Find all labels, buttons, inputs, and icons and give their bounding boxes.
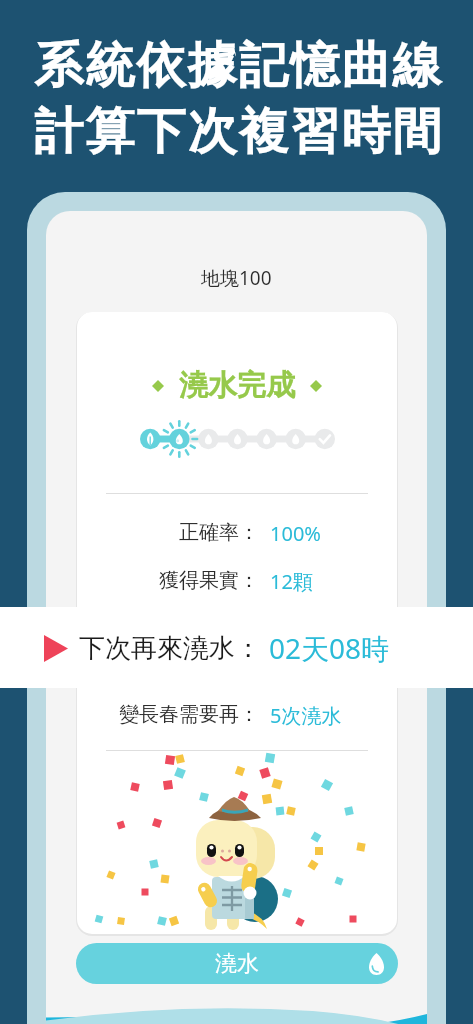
staticText: 澆水完成 xyxy=(179,367,295,404)
staticText: 變長春需要再： xyxy=(119,702,259,727)
staticText: 12顆 xyxy=(270,568,313,595)
staticText: 正確率： xyxy=(179,520,259,545)
staticText: 下次再來澆水： xyxy=(79,632,261,665)
button[interactable]: 地塊100 xyxy=(187,255,286,301)
staticText: 地塊100 xyxy=(201,265,272,291)
staticText: 100% xyxy=(270,520,321,547)
staticText: 獲得果實： xyxy=(159,568,259,593)
button[interactable]: 澆水完成 xyxy=(77,312,397,934)
staticText: 下次再來澆水： xyxy=(119,635,259,660)
button[interactable]: 澆水 xyxy=(76,943,398,984)
staticText: 02天08時 xyxy=(269,629,390,667)
staticText: 澆水 xyxy=(215,950,259,978)
staticText: 02天08時 xyxy=(270,635,356,662)
button[interactable]: 下次再來澆水： xyxy=(0,607,473,688)
staticText: 系統依據記憶曲線 計算下次複習時間 xyxy=(5,35,473,162)
staticText: 5次澆水 xyxy=(270,702,342,729)
